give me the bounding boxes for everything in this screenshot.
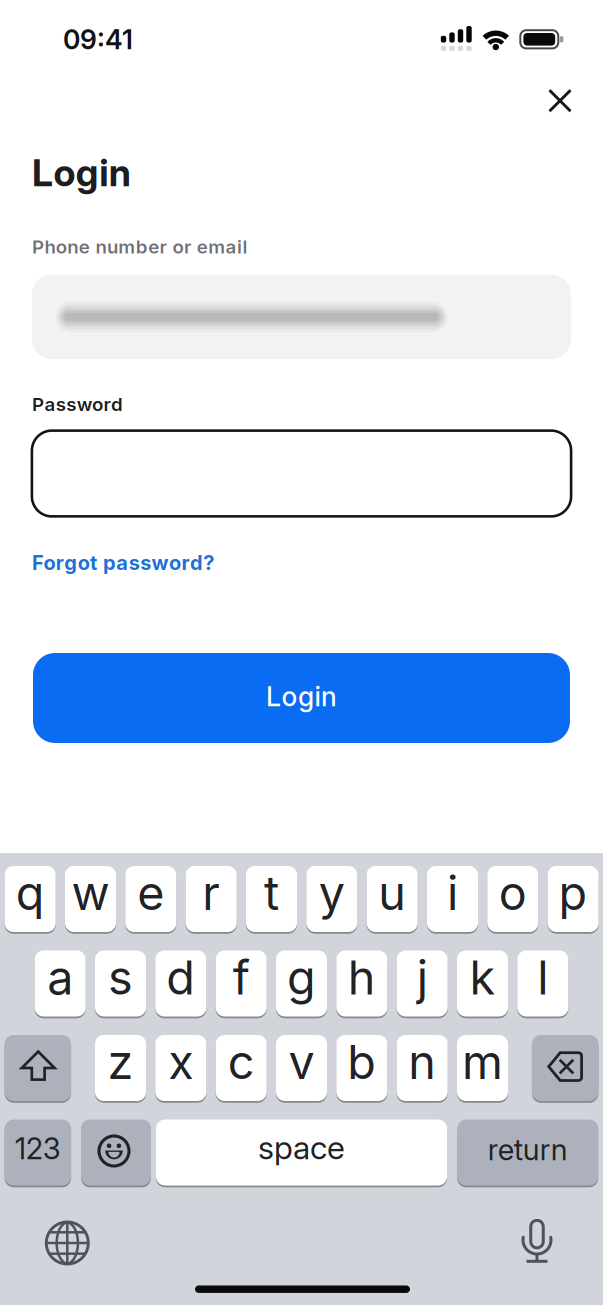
button[interactable]: p: [548, 864, 599, 934]
button[interactable]: j: [397, 948, 448, 1018]
button[interactable]: v: [276, 1033, 327, 1103]
button[interactable]: b: [336, 1033, 387, 1103]
button[interactable]: Password: [32, 431, 571, 516]
button[interactable]: u: [367, 864, 418, 934]
button[interactable]: d: [155, 948, 206, 1018]
staticText: j: [417, 950, 428, 1005]
button[interactable]: a: [35, 948, 86, 1018]
button[interactable]: q: [5, 864, 56, 934]
button[interactable]: Delete: [532, 1033, 598, 1103]
button[interactable]: h: [336, 948, 387, 1018]
button[interactable]: z: [95, 1033, 146, 1103]
staticText: return: [488, 1132, 568, 1167]
staticText: u: [378, 865, 406, 921]
button[interactable]: Next keyboard: [35, 1211, 99, 1275]
staticText: v: [288, 1034, 314, 1090]
staticText: s: [108, 950, 133, 1005]
staticText: Login: [266, 681, 337, 712]
button[interactable]: return: [457, 1117, 598, 1187]
staticText: c: [228, 1034, 255, 1090]
staticText: l: [537, 950, 548, 1005]
button[interactable]: l: [517, 948, 568, 1018]
staticText: k: [469, 950, 495, 1005]
staticText: y: [319, 865, 345, 921]
staticText: w: [71, 865, 109, 921]
staticText: t: [264, 865, 279, 921]
staticText: m: [462, 1034, 503, 1090]
staticText: Forgot password?: [32, 551, 214, 574]
button[interactable]: x: [155, 1033, 206, 1103]
button[interactable]: n: [397, 1033, 448, 1103]
button[interactable]: space: [156, 1117, 447, 1187]
staticText: p: [559, 865, 588, 921]
staticText: e: [137, 865, 164, 921]
button[interactable]: Phone number or email: [32, 275, 571, 359]
staticText: 123: [15, 1131, 61, 1166]
staticText: z: [107, 1034, 133, 1090]
staticText: o: [499, 865, 527, 921]
staticText: x: [168, 1034, 193, 1090]
staticText: f: [233, 950, 250, 1005]
staticText: i: [447, 865, 458, 921]
button[interactable]: Emoji: [81, 1117, 151, 1187]
button[interactable]: f: [216, 948, 267, 1018]
button[interactable]: s: [95, 948, 146, 1018]
button[interactable]: Shift: [5, 1033, 71, 1103]
button[interactable]: i: [427, 864, 478, 934]
button[interactable]: Forgot password?: [0, 0, 603, 1305]
button[interactable]: Close: [535, 75, 585, 125]
staticText: n: [408, 1034, 436, 1090]
staticText: space: [258, 1129, 345, 1166]
button[interactable]: o: [487, 864, 538, 934]
button[interactable]: t: [246, 864, 297, 934]
button[interactable]: Login: [33, 653, 570, 743]
staticText: r: [202, 865, 220, 921]
staticText: h: [348, 950, 376, 1005]
button[interactable]: y: [306, 864, 357, 934]
staticText: g: [287, 950, 316, 1005]
button[interactable]: Dictate: [505, 1208, 569, 1272]
button[interactable]: m: [457, 1033, 508, 1103]
button[interactable]: c: [216, 1033, 267, 1103]
staticText: Password: [32, 393, 123, 415]
staticText: q: [16, 865, 45, 921]
button[interactable]: g: [276, 948, 327, 1018]
button[interactable]: e: [125, 864, 176, 934]
button[interactable]: w: [65, 864, 116, 934]
button[interactable]: r: [186, 864, 237, 934]
staticText: d: [166, 950, 195, 1005]
staticText: Phone number or email: [32, 236, 247, 258]
staticText: Login: [32, 151, 131, 195]
staticText: a: [47, 950, 73, 1005]
staticText: b: [347, 1034, 376, 1090]
staticText: 09:41: [63, 24, 133, 55]
button[interactable]: k: [457, 948, 508, 1018]
button[interactable]: 123: [5, 1117, 71, 1187]
